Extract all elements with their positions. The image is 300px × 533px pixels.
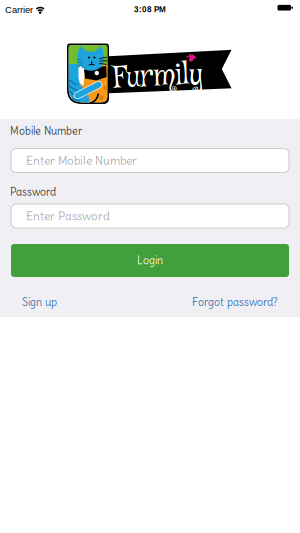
staticText: Enter Password	[26, 209, 110, 223]
staticText: Carrier	[5, 5, 33, 15]
staticText: Enter Mobile Number	[26, 153, 137, 168]
staticText: Enter Mobile Number	[26, 153, 137, 168]
button[interactable]: Login	[11, 244, 289, 277]
staticText: Sign up	[22, 295, 57, 309]
staticText: Login	[137, 254, 163, 267]
staticText: Password	[10, 185, 56, 199]
textField[interactable]: Enter Mobile Number	[26, 153, 289, 168]
staticText: Furmily	[113, 56, 203, 97]
staticText: 3:08 PM	[134, 5, 166, 14]
staticText: Forgot password?	[192, 295, 278, 309]
button[interactable]: Forgot password?	[192, 295, 278, 309]
staticText: Mobile Number	[10, 124, 82, 138]
button[interactable]: Sign up	[22, 295, 57, 309]
staticText: Enter Password	[26, 209, 110, 223]
secureTextField[interactable]: Enter Password	[26, 209, 289, 223]
